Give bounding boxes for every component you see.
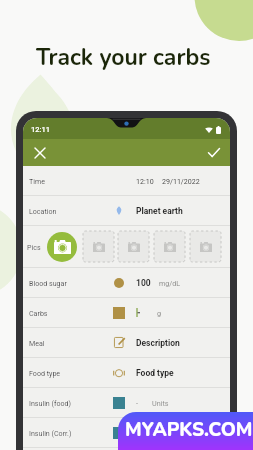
staticText: 29/11/2022 [162,177,200,185]
button[interactable]: Insulin (food) [23,388,230,417]
staticText: Pics [27,243,41,251]
staticText: Planet earth [136,206,183,216]
staticText: Insulin (Corr.) [29,429,72,437]
button[interactable]: Insulin (Corr.) [23,418,230,447]
staticText: Meal [29,339,45,347]
staticText: Insulin (food) [29,399,72,407]
button[interactable]: Food type [23,358,230,387]
staticText: - [136,399,138,407]
staticText: Food type [136,368,174,378]
button[interactable]: MYAPKS.COM [118,412,253,450]
staticText: Description [136,338,180,348]
staticText: Location [29,207,57,215]
staticText: mg/dL [159,279,181,287]
button[interactable]: Meal [23,328,230,357]
button[interactable]: Carbs [23,298,230,327]
button[interactable]: Add photo [190,231,221,262]
button[interactable]: Close [28,141,51,164]
staticText: Carbs [29,309,48,317]
staticText: Time [29,177,45,185]
button[interactable]: Insulin [23,448,230,450]
button[interactable]: Add photo [83,231,114,262]
button[interactable]: Location [23,196,230,225]
staticText: g [157,309,162,317]
button[interactable]: Time [23,166,230,195]
staticText: Food type [29,369,61,377]
staticText: Blood sugar [29,279,67,287]
staticText: MYAPKS.COM [125,417,253,443]
button[interactable]: Take picture [47,232,77,262]
button[interactable]: Add photo [118,231,149,262]
button[interactable]: Add photo [154,231,185,262]
button[interactable]: Save [202,141,225,164]
staticText: - [136,429,138,437]
button[interactable]: Blood sugar [23,268,230,297]
staticText: Units [152,399,169,407]
staticText: Units [152,429,169,437]
staticText: 100 [136,278,151,288]
staticText: Track your carbs [36,42,211,73]
staticText: 12:11 [31,125,51,134]
staticText: 12:10 [136,177,154,185]
